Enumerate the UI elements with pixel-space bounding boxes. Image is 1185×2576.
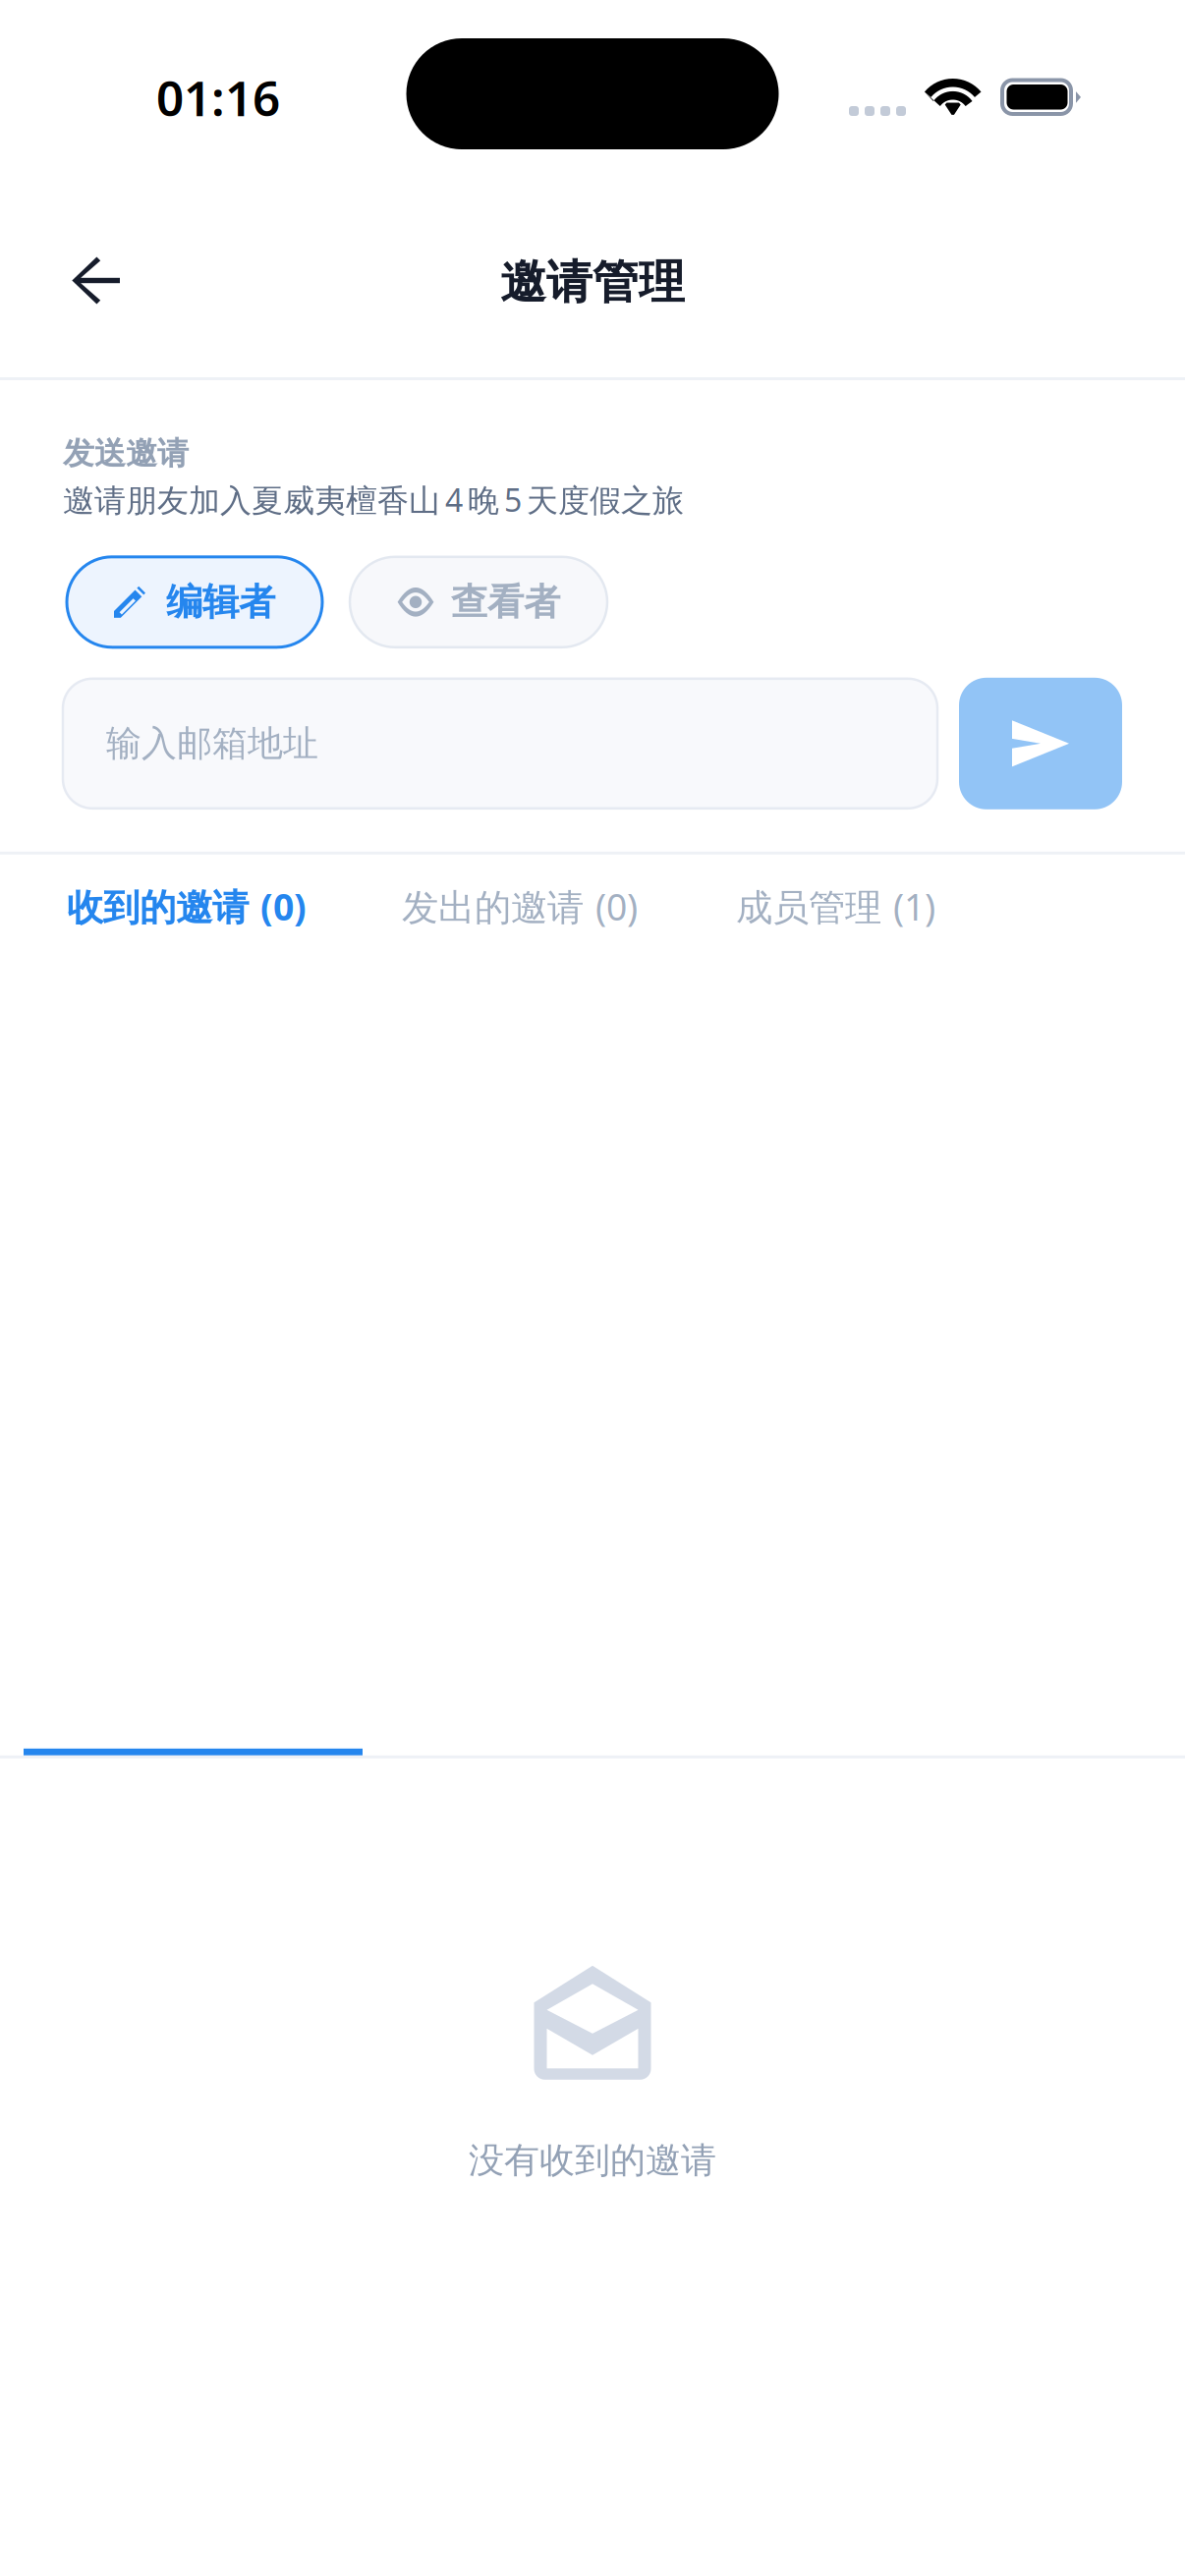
button[interactable]: 成员管理 (1) <box>693 855 979 958</box>
button[interactable]: 收到的邀请 (0) <box>24 855 350 958</box>
staticText: 邀请管理 <box>500 254 685 311</box>
staticText: 查看者 <box>451 580 560 625</box>
button[interactable]: 发出的邀请 (0) <box>350 855 693 958</box>
button[interactable]: 编辑者 <box>67 557 322 647</box>
staticText: 发送邀请 <box>63 434 189 473</box>
staticText: 收到的邀请 (0) <box>67 882 307 931</box>
staticText: 01:16 <box>156 65 280 129</box>
button[interactable]: Back <box>0 226 159 338</box>
staticText: 发出的邀请 (0) <box>402 882 638 931</box>
staticText: 邀请朋友加入夏威夷檀香山 4 晚 5 天度假之旅 <box>63 479 684 521</box>
button[interactable]: 查看者 <box>350 557 607 647</box>
staticText: 输入邮箱地址 <box>106 722 318 765</box>
staticText: 成员管理 (1) <box>736 882 935 931</box>
staticText: 没有收到的邀请 <box>469 2139 716 2182</box>
button[interactable]: Send invite <box>959 678 1122 809</box>
staticText: 编辑者 <box>166 580 275 625</box>
